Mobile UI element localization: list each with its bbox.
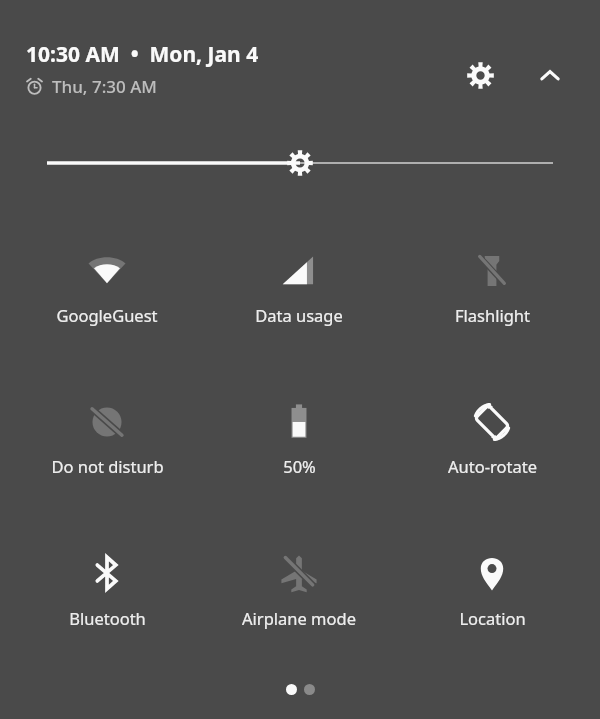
staticText: Flashlight	[455, 304, 530, 326]
button[interactable]	[31, 380, 183, 476]
staticText: Auto-rotate	[448, 455, 537, 477]
button[interactable]	[223, 229, 375, 325]
staticText: Location	[459, 607, 526, 629]
button[interactable]: Brightness	[0, 132, 600, 194]
staticText: 50%	[283, 455, 316, 477]
button[interactable]: Settings	[458, 53, 502, 97]
staticText: Bluetooth	[69, 607, 146, 629]
button[interactable]	[31, 531, 183, 627]
button[interactable]	[223, 380, 375, 476]
staticText: 10:30 AM • Mon, Jan 4	[26, 40, 259, 69]
button[interactable]	[31, 229, 183, 325]
staticText: GoogleGuest	[56, 304, 158, 326]
button[interactable]	[416, 229, 568, 325]
button[interactable]	[416, 380, 568, 476]
staticText: Airplane mode	[242, 607, 356, 629]
button[interactable]: Collapse	[528, 54, 572, 98]
staticText: Do not disturb	[51, 455, 164, 477]
staticText: Thu, 7:30 AM	[52, 75, 157, 98]
button[interactable]	[416, 531, 568, 627]
staticText: Data usage	[255, 304, 343, 326]
button[interactable]	[223, 531, 375, 627]
